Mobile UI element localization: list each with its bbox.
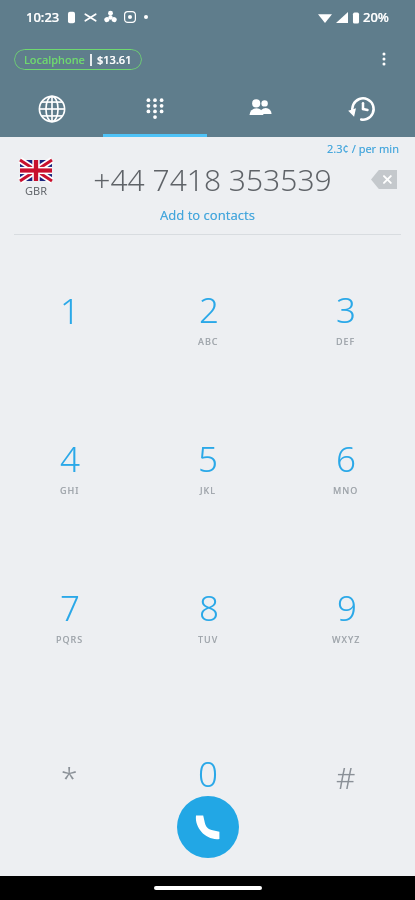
staticText: 3 — [336, 286, 356, 334]
staticText: Localphone — [24, 52, 85, 67]
staticText: Add to contacts — [160, 206, 255, 224]
button[interactable]: 3 — [277, 241, 415, 391]
button[interactable]: Calling rates — [0, 84, 103, 134]
staticText: GHI — [60, 484, 80, 496]
staticText: 2 — [199, 286, 219, 334]
staticText: JKL — [200, 484, 217, 496]
staticText: GBR — [25, 183, 47, 198]
button[interactable]: GBR — [8, 160, 64, 198]
staticText: ABC — [198, 335, 219, 347]
staticText: 2.3¢ / per min — [327, 141, 399, 156]
button[interactable]: # — [277, 689, 415, 876]
button[interactable]: 8 — [139, 540, 277, 689]
staticText: * — [61, 757, 78, 798]
staticText: 5 — [198, 435, 218, 483]
button[interactable]: 0 — [139, 689, 277, 876]
button[interactable]: Call — [177, 796, 239, 858]
button[interactable]: 7 — [0, 540, 139, 689]
button[interactable]: 2 — [139, 241, 277, 391]
staticText: WXYZ — [332, 633, 361, 645]
staticText: MNO — [333, 484, 359, 496]
button[interactable]: Localphone — [14, 49, 142, 70]
button[interactable]: Backspace — [361, 156, 407, 202]
staticText: 0 — [198, 750, 218, 798]
staticText: $13.61 — [97, 52, 132, 67]
button[interactable]: More options — [367, 42, 401, 76]
staticText: # — [336, 757, 356, 798]
staticText: 1 — [60, 287, 80, 335]
staticText: 4 — [60, 435, 80, 483]
button[interactable]: 4 — [0, 391, 139, 540]
staticText: 10:23 — [26, 8, 60, 26]
button[interactable]: Dialpad — [103, 84, 207, 134]
staticText: 9 — [337, 584, 357, 632]
button[interactable]: Contacts — [207, 84, 311, 134]
staticText: 7 — [60, 584, 80, 632]
staticText: 20% — [363, 8, 389, 26]
staticText: 8 — [199, 584, 219, 632]
staticText: TUV — [198, 633, 219, 645]
staticText: PQRS — [56, 633, 84, 645]
button[interactable]: Recents — [311, 84, 415, 134]
staticText: 6 — [336, 435, 356, 483]
staticText: +44 7418 353539 — [93, 159, 332, 200]
button[interactable]: 9 — [277, 540, 415, 689]
button[interactable]: * — [0, 689, 139, 876]
staticText: DEF — [336, 335, 356, 347]
button[interactable]: 1 — [0, 241, 139, 391]
button[interactable]: Add to contacts — [148, 204, 267, 226]
button[interactable]: 6 — [277, 391, 415, 540]
button[interactable]: 5 — [139, 391, 277, 540]
